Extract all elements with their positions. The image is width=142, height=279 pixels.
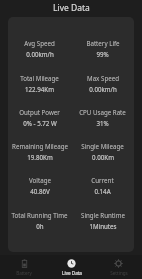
button[interactable]: Total Mileage [8, 74, 134, 93]
staticText: Remaining Mileage [12, 142, 68, 150]
staticText: Settings [110, 270, 128, 276]
button[interactable]: Remaining Mileage [8, 142, 134, 161]
staticText: Single Mileage [81, 142, 124, 150]
staticText: 40.86V [30, 187, 50, 195]
staticText: Avg Speed [24, 39, 55, 47]
staticText: 19.80Km [27, 153, 53, 161]
staticText: Max Speed [87, 74, 119, 82]
button[interactable]: Settings [95, 259, 142, 276]
staticText: Battery [16, 270, 32, 276]
staticText: 0.14A [94, 187, 111, 195]
staticText: Current [91, 176, 114, 184]
button[interactable]: Avg Speed [8, 39, 134, 58]
button[interactable]: Live Data [48, 259, 95, 276]
staticText: Total Running Time [11, 211, 68, 219]
staticText: 1Minutes [89, 222, 117, 230]
staticText: Output Power [19, 108, 60, 116]
staticText: 31% [96, 119, 109, 127]
staticText: CPU Usage Rate [79, 108, 126, 116]
staticText: 99% [96, 50, 109, 58]
staticText: Battery Life [86, 39, 120, 47]
staticText: 0.00km/h [89, 85, 117, 93]
staticText: 0.00km/h [26, 50, 54, 58]
staticText: Live Data [53, 2, 90, 14]
staticText: 122.94Km [25, 85, 54, 93]
staticText: 0% - 5.72 W [23, 119, 57, 127]
button[interactable]: Output Power [8, 108, 134, 127]
button[interactable]: Battery [0, 259, 48, 276]
staticText: Voltage [29, 176, 51, 184]
staticText: 0.00Km [92, 153, 114, 161]
staticText: 0h [36, 222, 44, 230]
button[interactable]: Voltage [8, 176, 134, 195]
staticText: Live Data [62, 270, 82, 276]
staticText: Single Runtime [81, 211, 125, 219]
button[interactable]: Total Running Time [8, 211, 134, 230]
staticText: Total Mileage [20, 74, 59, 82]
